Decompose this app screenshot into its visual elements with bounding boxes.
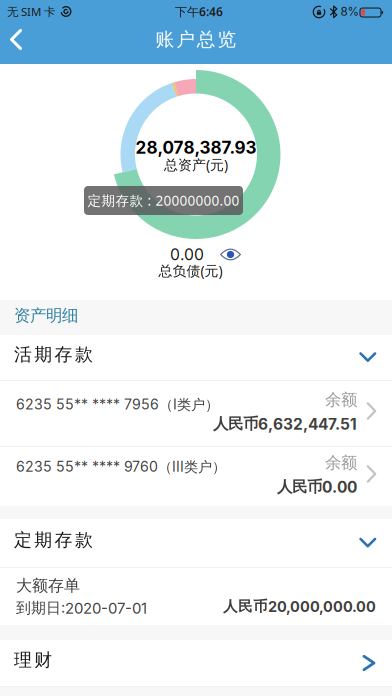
button[interactable]: 活期存款 [0, 335, 392, 380]
staticText: 6235 55** **** 9760（III类户） [16, 458, 226, 476]
button[interactable]: 6235 55** **** 9760（III类户） [0, 447, 392, 506]
staticText: 账户总览 [156, 28, 236, 51]
staticText: 总资产(元) [164, 155, 228, 174]
staticText: 人民币6,632,447.51 [213, 414, 357, 434]
staticText: 余额 [325, 389, 357, 410]
staticText: 理财 [14, 649, 52, 671]
button[interactable]: 大额存单 [0, 568, 392, 625]
staticText: 定期存款 : 20000000.00 [87, 191, 239, 210]
staticText: 资产明细 [14, 305, 78, 326]
staticText: 28,078,387.93 [135, 137, 256, 158]
button[interactable]: 返回 [0, 28, 36, 51]
staticText: 人民币20,000,000.00 [223, 597, 376, 616]
staticText: 8% [340, 4, 359, 19]
staticText: 余额 [325, 452, 357, 473]
staticText: 大额存单 [16, 575, 80, 596]
staticText: 活期存款 [14, 343, 93, 366]
staticText: 定期存款 [14, 529, 93, 551]
staticText: 下午6:46 [175, 3, 223, 20]
button[interactable]: 隐藏金额 [220, 248, 241, 260]
staticText: 总负债(元) [158, 261, 222, 280]
button[interactable]: 定期存款 [0, 519, 392, 567]
button[interactable]: 理财 [0, 640, 392, 686]
staticText: 人民币0.00 [277, 477, 357, 497]
staticText: 0.00 [170, 245, 204, 264]
button[interactable]: 6235 55** **** 7956（I类户） [0, 381, 392, 446]
staticText: 到期日:2020-07-01 [16, 599, 147, 617]
staticText: 6235 55** **** 7956（I类户） [16, 396, 219, 414]
staticText: 无 SIM 卡 [7, 4, 55, 19]
